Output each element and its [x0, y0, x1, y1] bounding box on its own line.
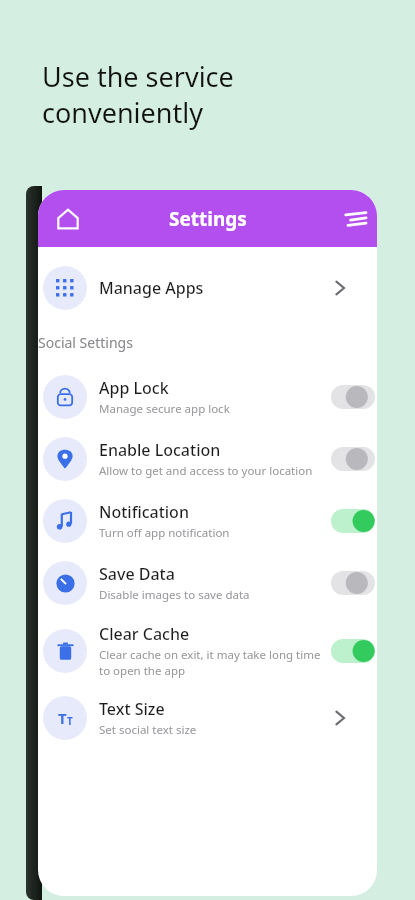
staticText: Manage secure app lock — [99, 401, 230, 417]
staticText: T — [58, 708, 67, 728]
staticText: Social Settings — [38, 333, 133, 352]
staticText: Clear cache on exit, it may take long ti… — [99, 647, 325, 678]
staticText: Allow to get and access to your location — [99, 463, 313, 479]
staticText: Text Size — [99, 698, 165, 720]
button[interactable]: App Lock — [38, 366, 377, 428]
button[interactable]: Enable Location — [38, 428, 377, 490]
button[interactable]: Menu — [335, 199, 375, 239]
staticText: Clear Cache — [99, 623, 190, 645]
staticText: Set social text size — [99, 722, 197, 738]
staticText: Notification — [99, 501, 189, 523]
staticText: Use the service conveniently — [42, 58, 234, 131]
button[interactable]: Manage Apps — [38, 257, 377, 319]
button[interactable]: Home — [48, 199, 88, 239]
staticText: Manage Apps — [99, 277, 204, 299]
button[interactable]: T — [38, 687, 377, 749]
staticText: Turn off app notification — [99, 525, 230, 541]
staticText: Settings — [169, 206, 247, 232]
button[interactable]: Clear Cache — [38, 614, 377, 687]
staticText: App Lock — [99, 377, 169, 399]
button[interactable]: Notification — [38, 490, 377, 552]
staticText: Save Data — [99, 563, 175, 585]
staticText: Enable Location — [99, 439, 221, 461]
button[interactable]: Save Data — [38, 552, 377, 614]
staticText: T — [67, 714, 73, 728]
staticText: Disable images to save data — [99, 587, 250, 603]
